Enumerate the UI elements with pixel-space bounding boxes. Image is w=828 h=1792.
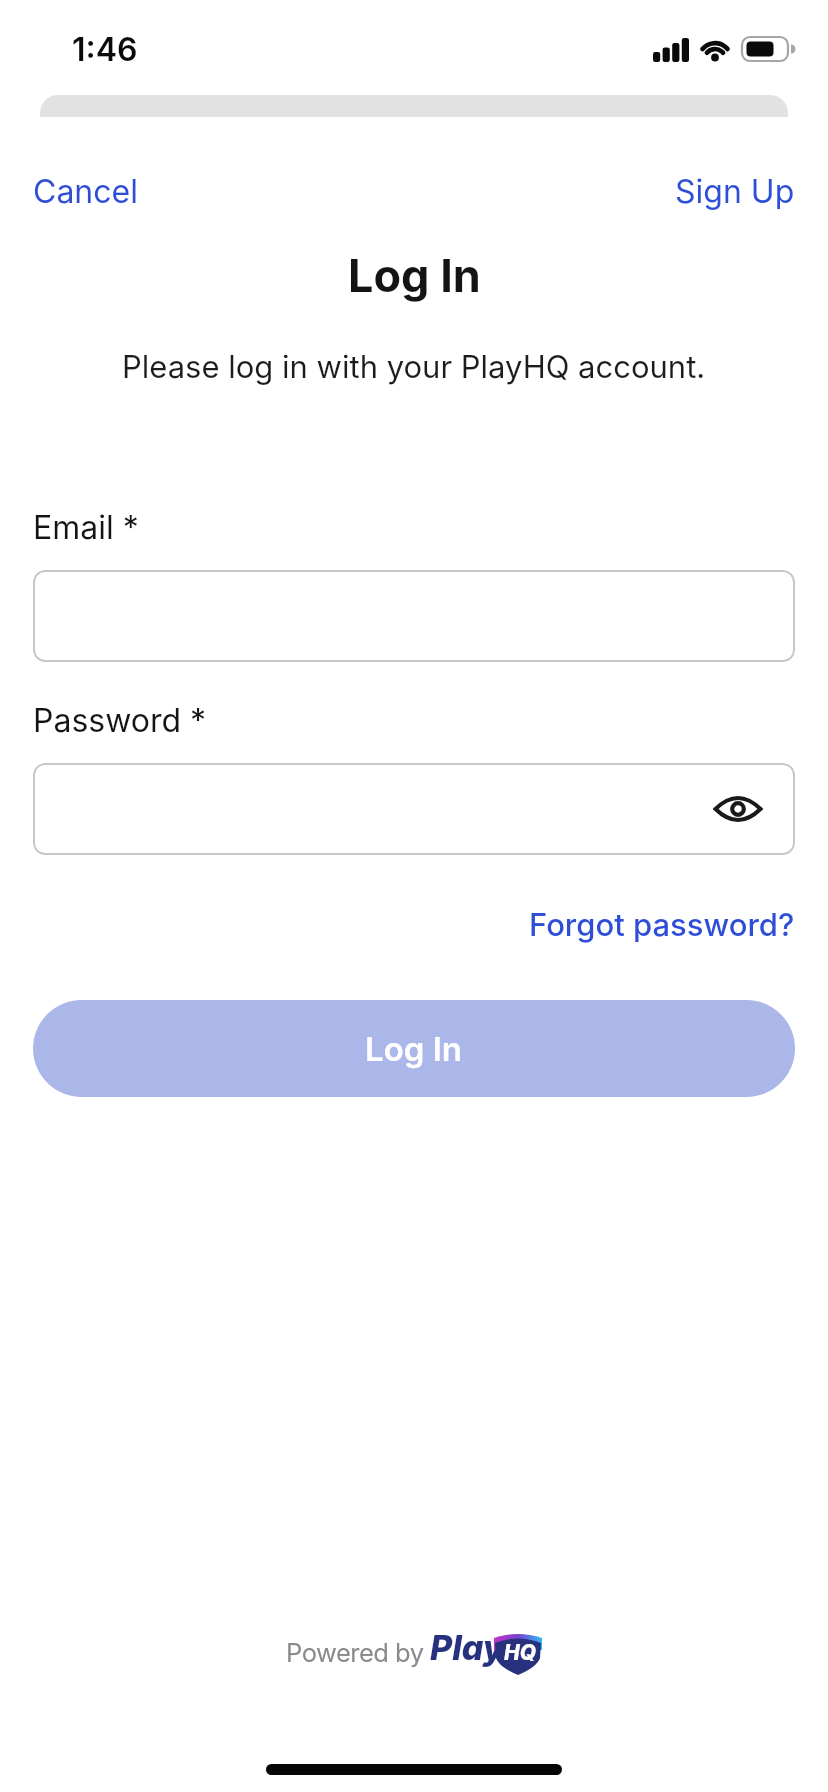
button[interactable] — [33, 570, 795, 662]
staticText: Log In — [365, 1029, 463, 1069]
staticText: Cancel — [33, 172, 138, 211]
staticText: Password * — [33, 701, 207, 740]
staticText: Log In — [348, 248, 481, 302]
staticText: Email * — [33, 508, 139, 547]
staticText: Forgot password? — [529, 906, 795, 944]
staticText: HQ — [504, 1640, 536, 1665]
button[interactable]: Sign Up — [675, 172, 795, 211]
staticText: Sign Up — [675, 172, 795, 211]
staticText: Play — [430, 1627, 504, 1668]
button[interactable] — [33, 763, 795, 855]
staticText: 1:46 — [72, 30, 138, 69]
button[interactable]: Forgot password? — [529, 906, 795, 944]
staticText: Please log in with your PlayHQ account. — [122, 348, 706, 386]
button[interactable]: Log In — [33, 1000, 795, 1097]
button[interactable]: Cancel — [33, 172, 138, 211]
staticText: Powered by — [286, 1637, 424, 1668]
button[interactable] — [708, 783, 768, 835]
